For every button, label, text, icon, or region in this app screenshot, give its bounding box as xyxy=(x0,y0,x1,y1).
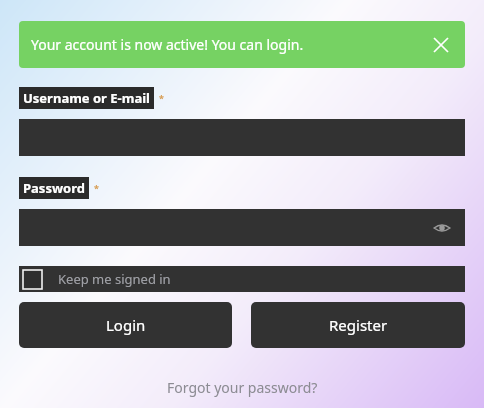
button[interactable]: Login xyxy=(19,302,232,348)
staticText: Password xyxy=(23,179,85,197)
staticText: Forgot your password? xyxy=(167,378,318,397)
button[interactable]: Register xyxy=(251,302,465,348)
staticText: Your account is now active! You can logi… xyxy=(31,35,304,54)
staticText: Keep me signed in xyxy=(58,270,171,288)
button[interactable]: Forgot your password? xyxy=(159,374,326,401)
staticText: Username or E-mail xyxy=(23,89,150,107)
button[interactable]: Close alert xyxy=(429,33,453,57)
staticText: Login xyxy=(106,315,146,335)
button[interactable]: Show password xyxy=(429,215,455,241)
button[interactable]: Your account is now active! You can logi… xyxy=(19,21,465,68)
staticText: Register xyxy=(329,315,388,335)
button[interactable]: Show password xyxy=(19,209,465,246)
staticText: * xyxy=(94,182,99,194)
staticText: * xyxy=(159,92,164,104)
button[interactable]: Keep me signed in xyxy=(19,266,465,292)
